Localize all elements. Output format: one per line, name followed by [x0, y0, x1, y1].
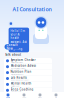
- staticText: assistant. Ask me anything.: [10, 40, 26, 51]
- staticText: Build better habits: [10, 91, 21, 93]
- button[interactable]: Mental Health: [4, 82, 52, 87]
- button[interactable]: Medication Advice: [4, 64, 52, 69]
- staticText: Symptom Checker: [10, 58, 35, 62]
- staticText: Talk it through: [10, 85, 19, 87]
- staticText: Plans: [38, 97, 42, 98]
- staticText: Chat: [22, 97, 25, 98]
- button[interactable]: Chat: [16, 93, 32, 98]
- staticText: Mental Health: [10, 82, 31, 85]
- staticText: Sleep Coaching: [10, 88, 33, 91]
- staticText: Daily meal guidance: [10, 73, 23, 75]
- button[interactable]: Symptom Checker: [4, 58, 52, 64]
- staticText: Me: [55, 97, 57, 98]
- staticText: Nutrition Plan: [10, 70, 31, 73]
- button[interactable]: Sleep Coaching: [4, 87, 52, 93]
- button[interactable]: Home: [0, 93, 16, 98]
- staticText: Talk about: [5, 53, 21, 56]
- staticText: Dosage & interactions: [10, 68, 25, 69]
- button[interactable]: Nutrition Plan: [4, 70, 52, 75]
- staticText: Consult Now: [6, 43, 17, 50]
- button[interactable]: Plans: [32, 93, 48, 98]
- staticText: Tell me how you feel: [10, 62, 22, 63]
- staticText: Hello! I'm your AI health: [10, 29, 24, 40]
- button[interactable]: Consult Now: [4, 44, 19, 50]
- button[interactable]: Lab Results: [4, 76, 52, 81]
- staticText: AI Consultation: [12, 6, 51, 13]
- staticText: Understand your report: [10, 79, 28, 81]
- staticText: Home: [6, 97, 10, 98]
- staticText: Lab Results: [10, 76, 26, 79]
- button[interactable]: Me: [48, 93, 64, 98]
- staticText: Medication Advice: [10, 64, 36, 67]
